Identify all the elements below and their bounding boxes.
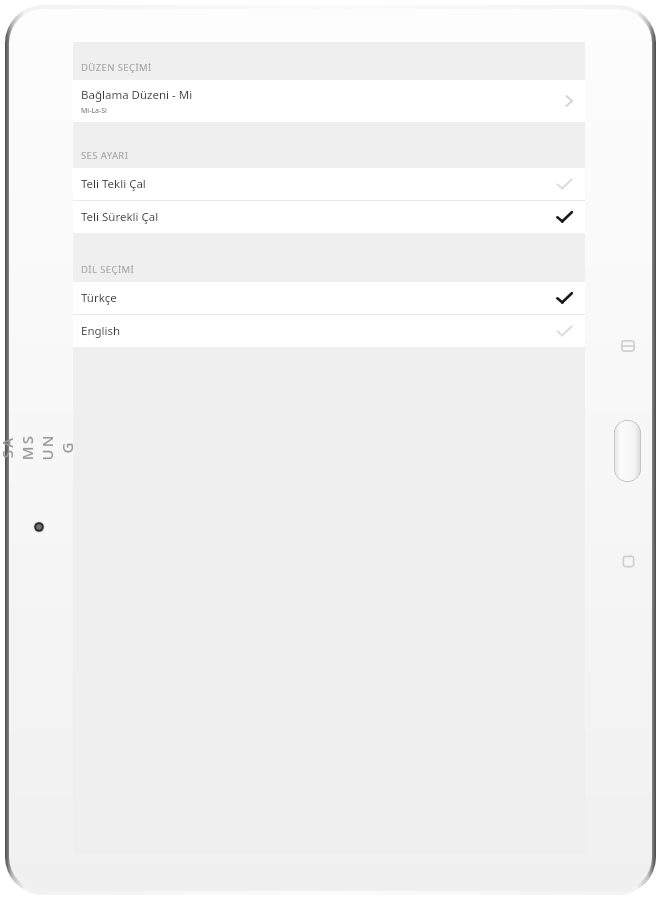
button[interactable]: Teli Sürekli Çal	[73, 201, 585, 233]
staticText: DİL SEÇİMİ	[81, 263, 135, 276]
staticText: English	[81, 323, 556, 339]
staticText: SAMSUNG	[0, 432, 77, 462]
button[interactable]: Home	[614, 420, 641, 482]
button[interactable]: Bağlama Düzeni - Mi	[73, 80, 585, 122]
staticText: Bağlama Düzeni - Mi	[81, 87, 193, 103]
staticText: Türkçe	[81, 290, 556, 306]
staticText: SES AYARI	[81, 149, 129, 162]
button[interactable]: Teli Tekli Çal	[73, 168, 585, 200]
staticText: Teli Sürekli Çal	[81, 209, 556, 225]
staticText: DÜZEN SEÇİMİ	[81, 61, 152, 74]
staticText: Mi-La-Si	[81, 106, 107, 116]
button[interactable]: Türkçe	[73, 282, 585, 314]
staticText: Teli Tekli Çal	[81, 176, 556, 192]
button[interactable]: Recents	[612, 330, 644, 362]
button[interactable]: Back	[612, 545, 644, 577]
button[interactable]: English	[73, 315, 585, 347]
